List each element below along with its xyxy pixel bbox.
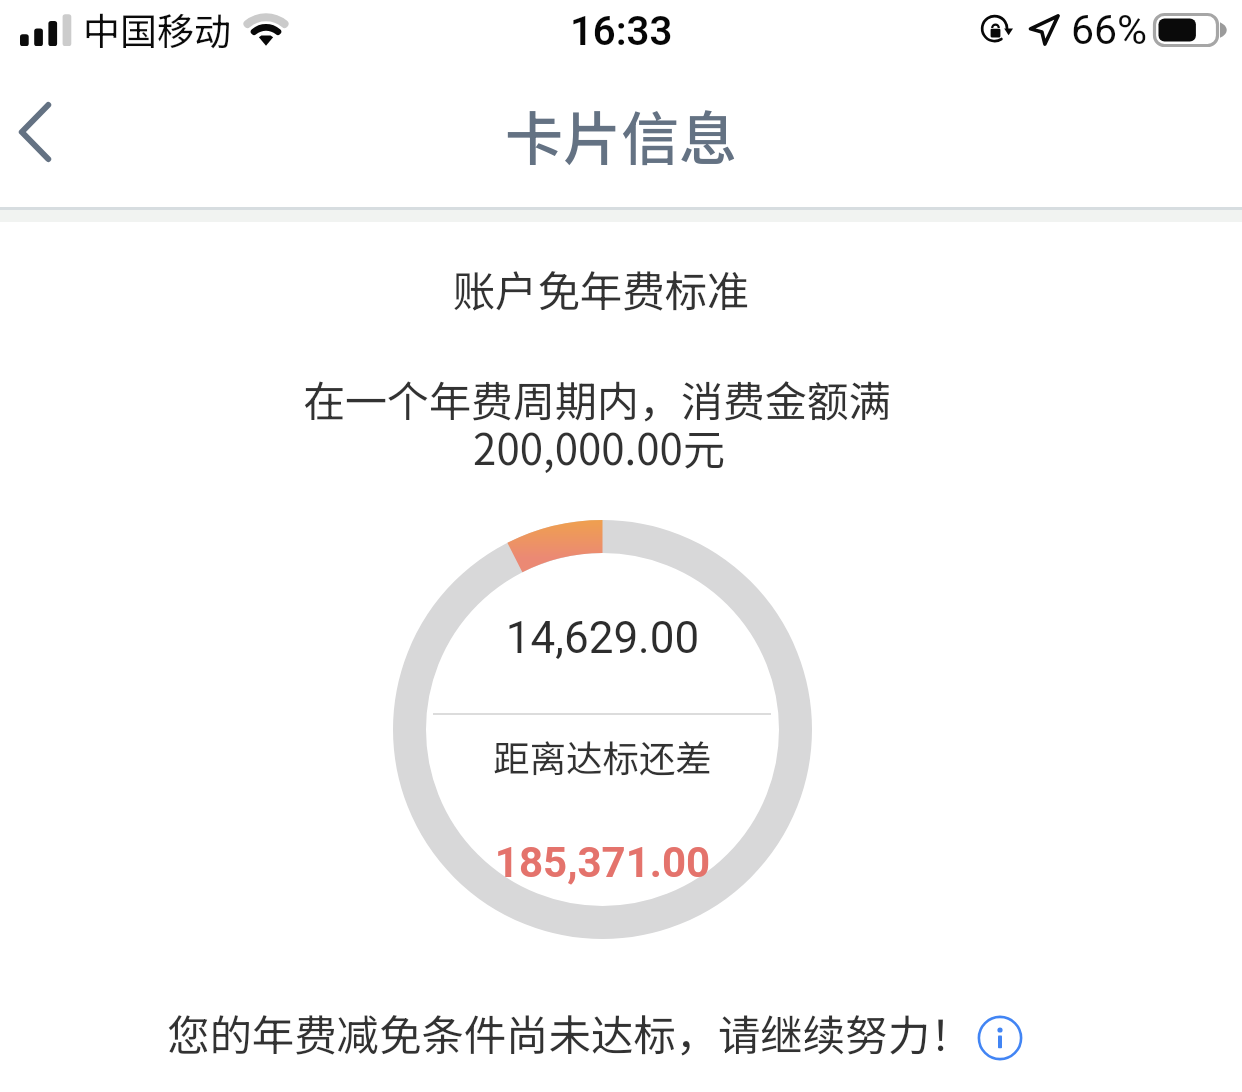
staticText: 16:33 (570, 8, 673, 55)
staticText: 66% (1071, 6, 1148, 54)
staticText: 14,629.00 (393, 612, 812, 664)
button[interactable]: Back (0, 84, 96, 180)
staticText: 您的年费减免条件尚未达标，请继续努力！ (167, 1002, 973, 1063)
staticText: 账户免年费标准 (0, 258, 1222, 319)
staticText: 卡片信息 (0, 93, 1242, 177)
button[interactable]: Info (976, 1014, 1024, 1062)
staticText: 在一个年费周期内，消费金额满 (0, 368, 1218, 429)
staticText: 中国移动 (83, 2, 231, 56)
staticText: 200,000.00元 (0, 416, 1220, 477)
staticText: 距离达标还差 (393, 730, 812, 783)
staticText: 185,371.00 (393, 838, 812, 887)
